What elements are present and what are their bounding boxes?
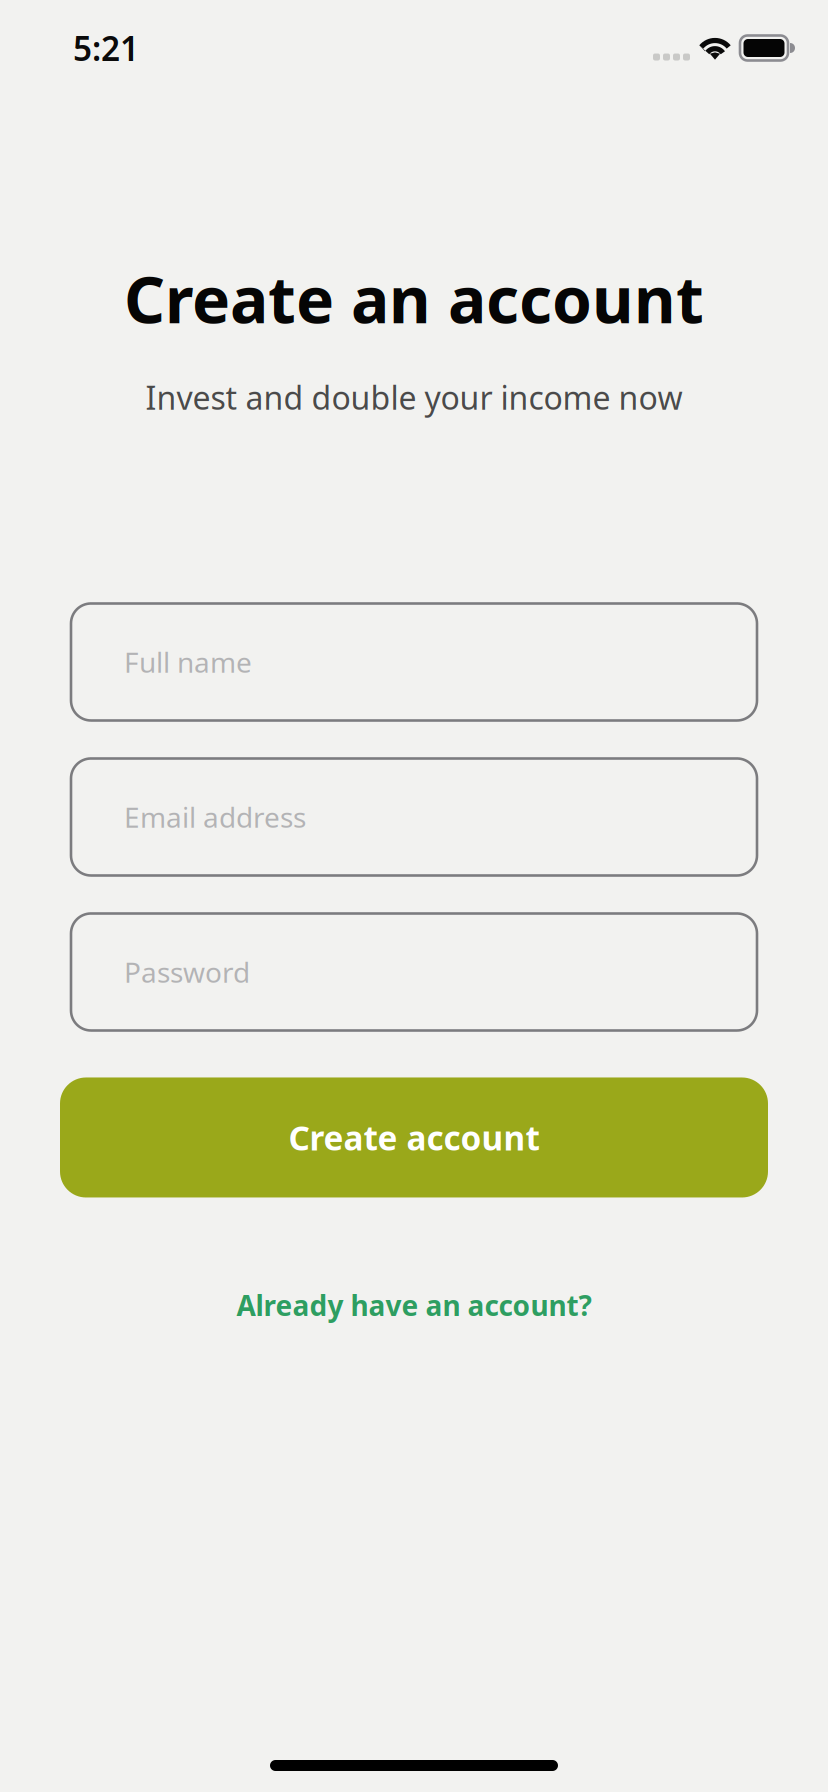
staticText: Create account [288,1115,539,1160]
staticText: Full name [124,643,252,681]
staticText: Invest and double your income now [145,376,682,418]
staticText: Create an account [124,256,704,341]
staticText: Email address [124,798,306,836]
button[interactable]: Already have an account? [236,1286,591,1324]
button[interactable]: Full name [71,603,757,720]
staticText: 5:21 [73,26,139,70]
staticText: Password [124,953,250,991]
button[interactable]: Email address [71,758,757,875]
button[interactable]: Create account [60,1077,768,1197]
button[interactable]: Password [71,913,757,1030]
staticText: Already have an account? [236,1286,591,1324]
